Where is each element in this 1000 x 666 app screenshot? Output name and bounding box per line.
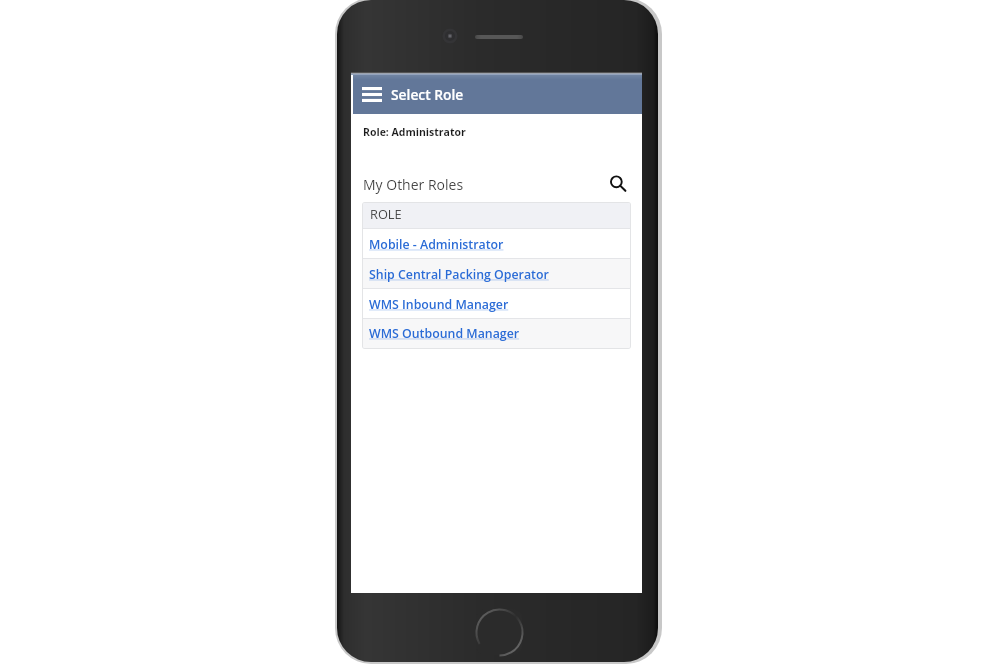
staticText: My Other Roles — [363, 175, 464, 194]
staticText: Ship Central Packing Operator — [369, 266, 549, 283]
button[interactable]: Search — [600, 172, 624, 196]
staticText: WMS Inbound Manager — [369, 296, 509, 313]
button[interactable]: Ship Central Packing Operator — [363, 259, 630, 289]
button[interactable]: WMS Inbound Manager — [363, 289, 630, 319]
button[interactable]: Mobile - Administrator — [363, 229, 630, 259]
staticText: Mobile - Administrator — [369, 236, 504, 253]
button[interactable]: Home — [476, 609, 523, 656]
staticText: ROLE — [370, 205, 402, 222]
button[interactable]: WMS Outbound Manager — [363, 319, 630, 348]
button[interactable]: Open navigation menu — [359, 82, 384, 107]
staticText: Select Role — [391, 85, 464, 104]
staticText: WMS Outbound Manager — [369, 325, 520, 342]
staticText: Role: Administrator — [363, 125, 466, 139]
